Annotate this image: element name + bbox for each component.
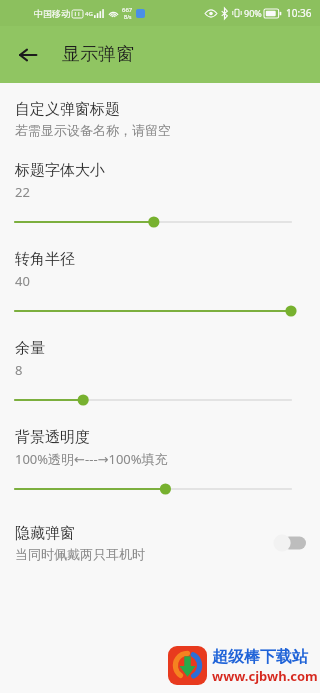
staticText: 隐藏弹窗 <box>15 524 75 543</box>
staticText: 8 <box>15 361 23 379</box>
staticText: 90% <box>244 7 262 19</box>
button[interactable]: Hide popup toggle <box>272 534 306 552</box>
staticText: 余量 <box>15 339 45 358</box>
button[interactable]: 余量 <box>0 388 320 412</box>
staticText: 当同时佩戴两只耳机时 <box>15 546 145 562</box>
staticText: 自定义弹窗标题 <box>15 100 120 119</box>
staticText: 100%透明←---→100%填充 <box>15 450 168 468</box>
staticText: 若需显示设备名称，请留空 <box>15 122 171 138</box>
button[interactable]: 标题字体大小 <box>0 210 320 234</box>
staticText: www.cjbwh.com <box>212 667 318 685</box>
staticText: 中国移动 <box>34 8 70 19</box>
staticText: 22 <box>15 183 30 201</box>
staticText: 标题字体大小 <box>15 161 105 180</box>
staticText: 4G <box>85 10 93 18</box>
staticText: 667 <box>122 6 133 14</box>
staticText: 显示弹窗 <box>62 43 134 66</box>
staticText: 10:36 <box>286 6 312 20</box>
staticText: 背景透明度 <box>15 428 90 447</box>
button[interactable]: 背景透明度 <box>0 477 320 501</box>
button[interactable]: 转角半径 <box>0 299 320 323</box>
staticText: B/s <box>124 14 132 21</box>
staticText: 超级棒下载站 <box>212 647 308 667</box>
staticText: 转角半径 <box>15 250 75 269</box>
button[interactable]: Back <box>8 35 48 75</box>
staticText: 40 <box>15 272 30 290</box>
button[interactable]: 隐藏弹窗 <box>0 519 320 567</box>
